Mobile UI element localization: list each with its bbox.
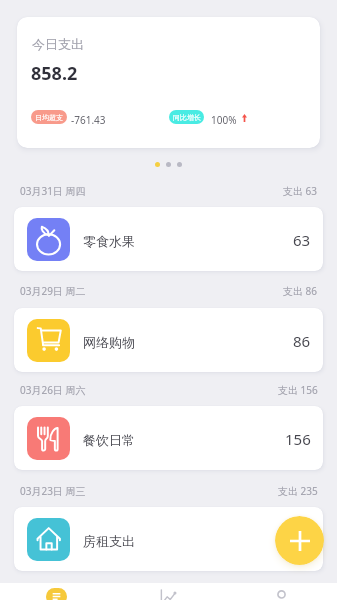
- button[interactable]: 今日支出: [17, 17, 320, 148]
- staticText: 858.2: [31, 61, 78, 86]
- staticText: 同比增长: [173, 113, 201, 122]
- staticText: 支出 63: [283, 184, 318, 198]
- staticText: 零食水果: [83, 233, 135, 249]
- button[interactable]: Statistics: [113, 583, 225, 600]
- staticText: 86: [293, 331, 311, 351]
- button[interactable]: Bills: [0, 583, 113, 600]
- button[interactable]: 房租支出: [14, 507, 323, 571]
- staticText: 日均超支: [35, 113, 63, 122]
- staticText: 03月26日 周六: [20, 383, 86, 397]
- staticText: -761.43: [71, 113, 106, 127]
- button[interactable]: 网络购物: [14, 308, 323, 372]
- staticText: 网络购物: [83, 334, 135, 350]
- staticText: 156: [285, 429, 311, 449]
- staticText: 100%: [211, 113, 237, 127]
- staticText: 支出 86: [283, 284, 318, 298]
- staticText: 03月23日 周三: [20, 484, 86, 498]
- staticText: 餐饮日常: [83, 432, 135, 448]
- staticText: 今日支出: [32, 36, 84, 52]
- button[interactable]: Profile: [225, 583, 337, 600]
- staticText: 支出 235: [278, 484, 318, 498]
- staticText: 03月29日 周二: [20, 284, 86, 298]
- button[interactable]: Add expense: [275, 516, 324, 565]
- staticText: 03月31日 周四: [20, 184, 86, 198]
- staticText: 支出 156: [278, 383, 318, 397]
- button[interactable]: 餐饮日常: [14, 406, 323, 470]
- staticText: 63: [293, 230, 311, 250]
- staticText: 房租支出: [83, 533, 135, 549]
- button[interactable]: 零食水果: [14, 207, 323, 271]
